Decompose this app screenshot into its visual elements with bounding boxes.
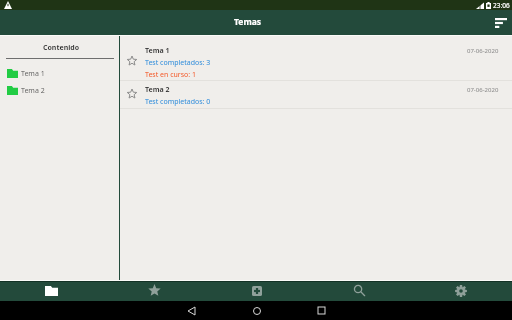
button[interactable]: Favourites [103,282,206,301]
button[interactable]: Home [224,301,289,320]
button[interactable]: Recents [289,301,354,320]
button[interactable]: Tema 1 [0,68,119,78]
staticText: 07-06-2020 [467,47,499,55]
staticText: 23:06 [493,1,510,10]
button[interactable]: Settings [410,282,512,301]
staticText: Tema 2 [145,85,170,95]
staticText: Temas [234,16,262,28]
staticText: Tema 1 [145,46,170,56]
staticText: Test completados: 3 [145,58,211,68]
button[interactable]: Folders [0,282,103,301]
button[interactable]: Favourite [125,54,139,68]
button[interactable]: Favourite [125,87,139,101]
staticText: 07-06-2020 [467,86,499,94]
button[interactable]: Back [159,301,224,320]
staticText: Contenido [43,43,80,53]
staticText: Test en curso: 1 [145,70,197,80]
staticText: Tema 2 [21,86,45,96]
staticText: Test completados: 0 [145,97,211,107]
button[interactable]: Sort [490,10,512,35]
button[interactable]: Tema 2 [0,85,119,95]
button[interactable]: Search [308,282,410,301]
button[interactable]: Favourite [120,36,512,80]
button[interactable]: Add [206,282,308,301]
staticText: Tema 1 [21,69,45,79]
button[interactable]: Favourite [120,81,512,108]
